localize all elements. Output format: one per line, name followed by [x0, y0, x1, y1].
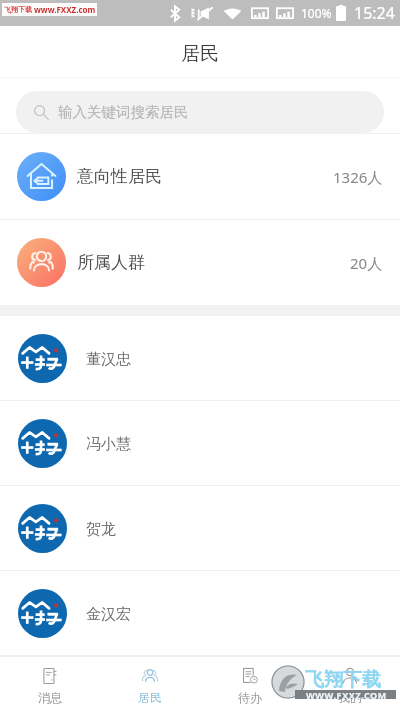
button[interactable]: 贺龙 [0, 486, 400, 570]
button[interactable]: 居民 [100, 657, 200, 711]
staticText: 所属人群 [77, 252, 145, 273]
staticText: WWW.FXXZ.COM [306, 689, 387, 701]
staticText: 董汉忠 [86, 350, 131, 369]
staticText: 1326人 [333, 167, 383, 187]
staticText: 飞翔下载 [4, 5, 32, 14]
staticText: 100% [301, 5, 332, 21]
staticText: 居民 [181, 42, 219, 66]
button[interactable]: 冯小慧 [0, 401, 400, 485]
button[interactable]: 意向性居民 [0, 134, 400, 219]
staticText: 待办 [238, 690, 262, 705]
staticText: 金汉宏 [86, 605, 131, 624]
staticText: 我的 [338, 690, 362, 705]
button[interactable]: 金汉宏 [0, 571, 400, 655]
staticText: 消息 [38, 690, 62, 705]
staticText: 飞翔下载 [305, 668, 381, 692]
staticText: www.FXXZ.com [34, 4, 96, 15]
staticText: 冯小慧 [86, 435, 131, 454]
staticText: 20人 [350, 253, 383, 273]
staticText: 输入关键词搜索居民 [58, 103, 189, 121]
button[interactable]: 董汉忠 [0, 316, 400, 400]
button[interactable]: 消息 [0, 657, 100, 711]
staticText: 15:24 [354, 2, 395, 24]
button[interactable]: 输入关键词搜索居民 [16, 91, 384, 133]
button[interactable]: 待办 [200, 657, 300, 711]
staticText: 贺龙 [86, 520, 116, 539]
button[interactable]: 我的 [300, 657, 400, 711]
staticText: 居民 [138, 690, 162, 705]
staticText: 意向性居民 [77, 166, 162, 187]
button[interactable]: 所属人群 [0, 220, 400, 305]
